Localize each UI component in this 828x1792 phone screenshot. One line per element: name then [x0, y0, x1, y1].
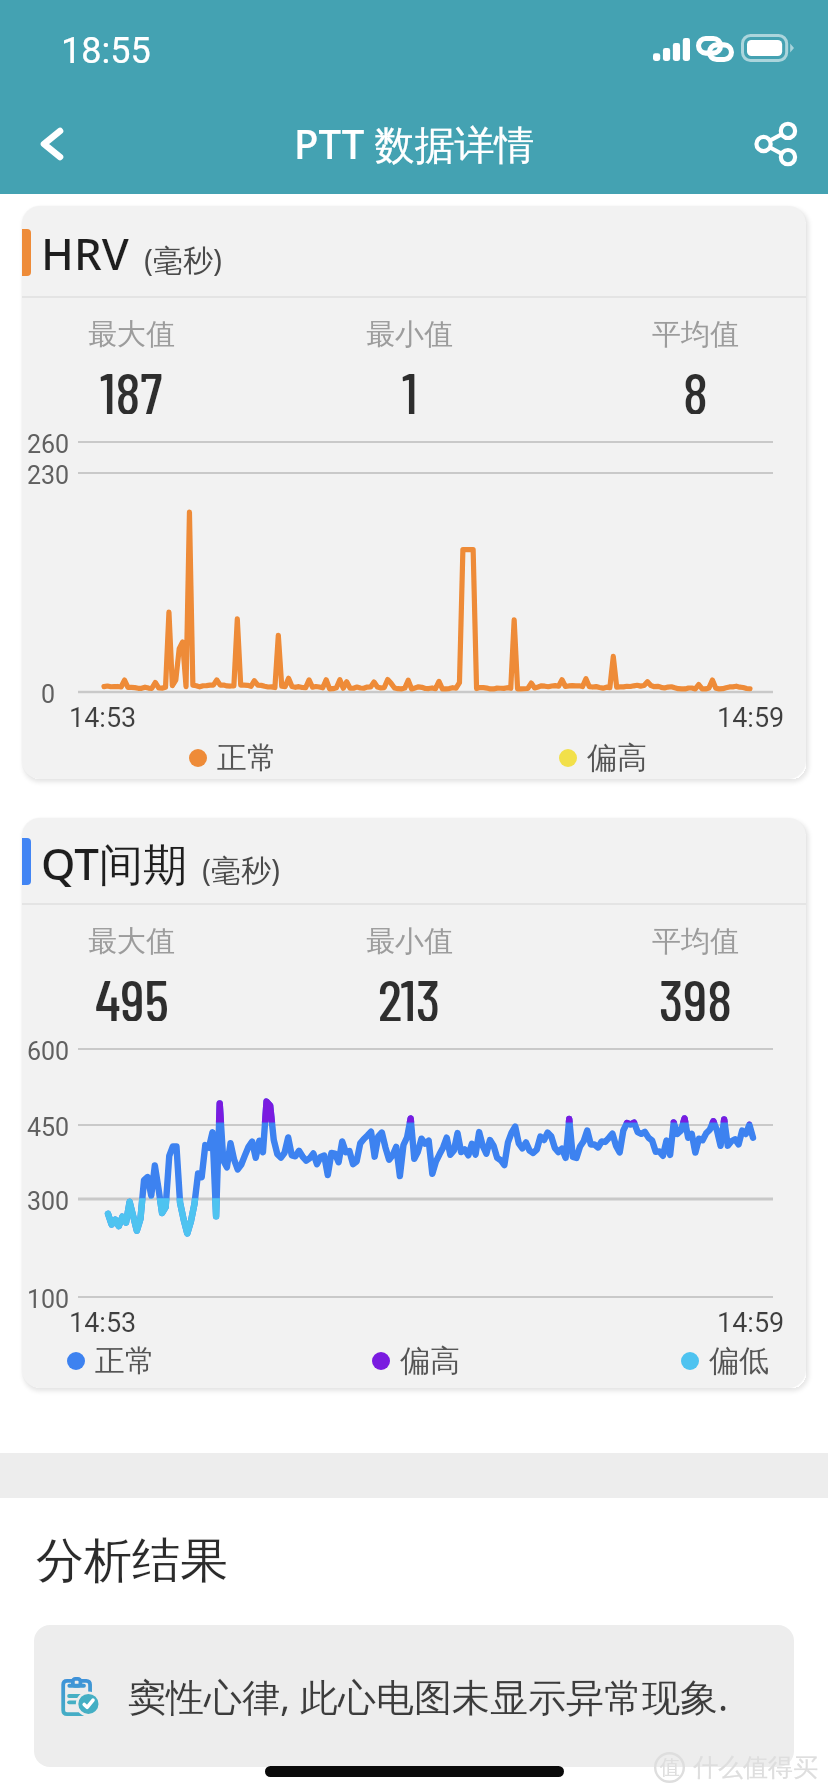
button[interactable]: 窦性心律, 此心电图未显示异常现象. — [34, 1625, 794, 1767]
button[interactable]: Back — [0, 93, 104, 194]
staticText: 偏高 — [587, 739, 647, 777]
staticText: 0 — [41, 680, 56, 709]
staticText: 分析结果 — [36, 1531, 228, 1591]
staticText: 14:59 — [717, 1307, 785, 1339]
staticText: PTT 数据详情 — [294, 116, 535, 171]
staticText: 18:55 — [61, 30, 151, 72]
staticText: 最大值 — [88, 316, 175, 353]
staticText: 260 — [27, 430, 70, 459]
button[interactable]: 正常 — [189, 739, 277, 777]
staticText: 正常 — [95, 1342, 155, 1380]
staticText: 平均值 — [652, 923, 739, 960]
staticText: 187 — [100, 357, 163, 414]
staticText: 偏高 — [400, 1342, 460, 1380]
staticText: 偏低 — [709, 1342, 769, 1380]
staticText: 600 — [27, 1037, 70, 1066]
staticText: 230 — [27, 461, 70, 490]
staticText: 8 — [683, 357, 708, 414]
staticText: HRV — [41, 223, 129, 283]
staticText: 平均值 — [652, 316, 739, 353]
staticText: 14:53 — [69, 702, 137, 734]
staticText: (毫秒) — [144, 239, 222, 280]
staticText: 最小值 — [366, 923, 453, 960]
staticText: 300 — [27, 1187, 70, 1216]
button[interactable]: 偏高 — [559, 739, 647, 777]
staticText: 窦性心律, 此心电图未显示异常现象. — [128, 1670, 729, 1722]
button[interactable]: 正常 — [67, 1342, 155, 1380]
button[interactable]: 偏高 — [372, 1342, 460, 1380]
staticText: 213 — [378, 964, 441, 1021]
staticText: 1 — [402, 357, 418, 414]
staticText: 什么值得买 — [693, 1752, 818, 1783]
staticText: 100 — [27, 1285, 70, 1314]
staticText: 最大值 — [88, 923, 175, 960]
staticText: 14:53 — [69, 1307, 137, 1339]
staticText: 495 — [95, 964, 169, 1021]
staticText: 14:59 — [717, 702, 785, 734]
staticText: 最小值 — [366, 316, 453, 353]
button[interactable]: 偏低 — [681, 1342, 769, 1380]
staticText: QT间期 — [41, 833, 187, 893]
staticText: 值 — [660, 1755, 680, 1780]
staticText: 450 — [27, 1113, 70, 1142]
staticText: 398 — [659, 964, 733, 1021]
staticText: 正常 — [217, 739, 277, 777]
button[interactable]: Share — [724, 93, 828, 194]
staticText: (毫秒) — [202, 849, 280, 890]
